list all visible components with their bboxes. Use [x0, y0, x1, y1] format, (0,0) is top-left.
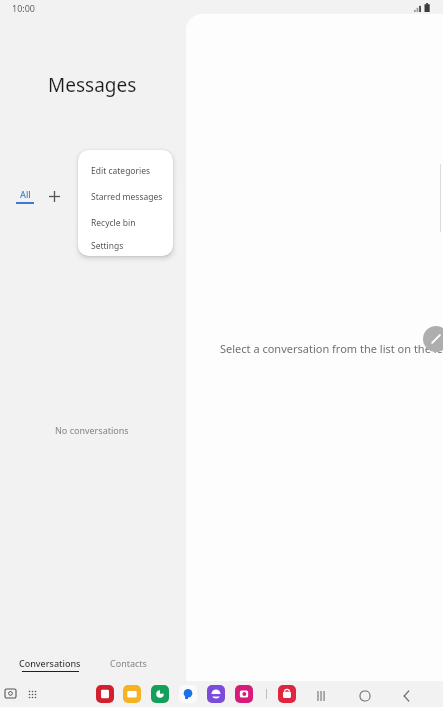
staticText: No conversations [55, 424, 129, 436]
button[interactable]: Recycle bin [78, 210, 173, 236]
button[interactable]: Recents [313, 687, 331, 705]
button[interactable]: Internet [207, 685, 225, 703]
button[interactable]: Messages [179, 685, 197, 703]
button[interactable]: Contacts [110, 657, 147, 669]
button[interactable]: Compose message [423, 326, 443, 352]
button[interactable]: All apps [25, 687, 39, 701]
button[interactable]: Shopping [278, 685, 296, 703]
button[interactable]: Settings [78, 236, 173, 256]
staticText: Messages [48, 72, 137, 98]
button[interactable]: Back [398, 687, 416, 705]
staticText: Recycle bin [91, 217, 136, 229]
button[interactable]: Phone [151, 685, 169, 703]
button[interactable]: Starred messages [78, 184, 173, 210]
button[interactable]: Home [356, 687, 374, 705]
button[interactable]: Conversations [19, 657, 81, 672]
button[interactable]: My Files [123, 685, 141, 703]
button[interactable]: All [16, 188, 34, 204]
staticText: Conversations [19, 657, 81, 669]
staticText: 10:00 [12, 2, 36, 14]
button[interactable]: Add category [45, 187, 63, 205]
staticText: Edit categories [91, 165, 151, 177]
button[interactable]: Gallery [235, 685, 253, 703]
button[interactable]: Notes [96, 685, 114, 703]
button[interactable]: Recent apps [3, 687, 17, 701]
staticText: Settings [91, 240, 124, 252]
staticText: Contacts [110, 657, 147, 669]
staticText: Select a conversation from the list on t… [220, 341, 443, 356]
staticText: Starred messages [91, 191, 163, 203]
button[interactable]: Edit categories [78, 158, 173, 184]
staticText: All [20, 188, 31, 200]
